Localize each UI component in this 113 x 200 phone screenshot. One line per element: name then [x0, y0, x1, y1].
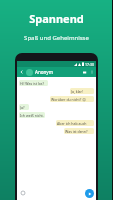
button[interactable]: Video call — [83, 70, 88, 75]
staticText: Anonym — [35, 69, 53, 75]
button[interactable]: Worüber du nicht? 😊 — [50, 96, 94, 102]
staticText: Worüber du nicht? 😊 — [51, 97, 86, 102]
button[interactable]: More options — [90, 70, 94, 74]
button[interactable]: Aber ich hab auch eine — [56, 120, 94, 126]
button[interactable]: Ja, klar! — [70, 88, 94, 94]
staticText: Spaß und Geheimnisse — [24, 34, 89, 42]
button[interactable]: Hi! Was ist los? — [19, 80, 48, 86]
staticText: Aber ich hab auch eine — [57, 121, 93, 126]
button[interactable]: Ja? — [19, 104, 29, 110]
staticText: 17:30 — [85, 62, 94, 67]
staticText: Ich weiß nicht. — [20, 113, 44, 118]
button[interactable] — [19, 188, 84, 198]
button[interactable]: Ich weiß nicht. — [19, 112, 45, 118]
staticText: Ja, klar! — [71, 89, 83, 94]
staticText: Ja? — [20, 105, 25, 110]
staticText: Hi! Was ist los? — [20, 81, 45, 86]
staticText: Spannend — [29, 11, 84, 26]
staticText: Was ist denn? — [65, 129, 88, 134]
button[interactable]: Was ist denn? — [64, 128, 94, 134]
button[interactable]: Back — [19, 69, 25, 75]
button[interactable]: Send — [85, 189, 94, 198]
